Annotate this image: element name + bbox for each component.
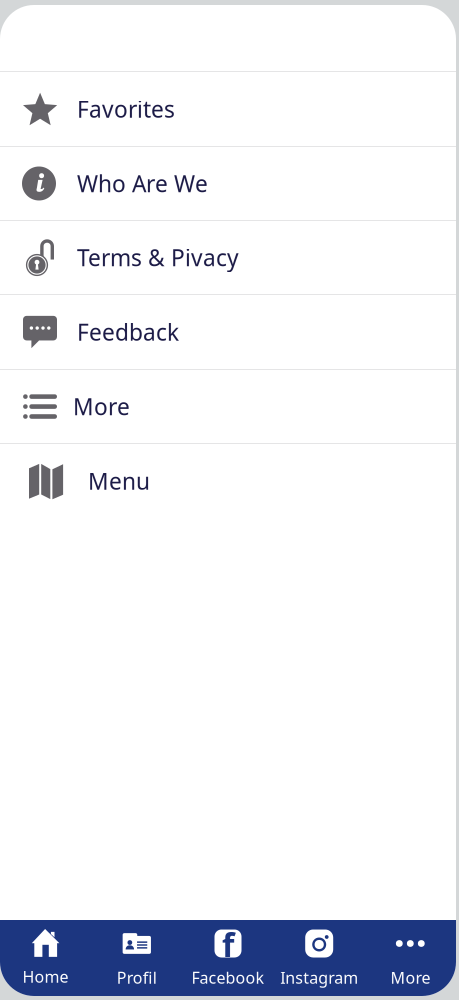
button[interactable]: More — [0, 370, 456, 443]
button[interactable]: Who Are We — [0, 147, 456, 220]
button[interactable]: Profil — [91, 920, 182, 996]
button[interactable]: Instagram — [274, 920, 365, 996]
staticText: Profil — [117, 967, 157, 988]
staticText: More — [73, 391, 130, 421]
staticText: Favorites — [77, 94, 175, 124]
staticText: Home — [23, 966, 69, 987]
staticText: Who Are We — [77, 168, 208, 198]
staticText: More — [390, 967, 430, 988]
button[interactable]: Menu — [0, 444, 456, 518]
button[interactable]: Home — [0, 920, 91, 996]
button[interactable]: f — [182, 920, 274, 996]
staticText: Terms & Pivacy — [77, 242, 239, 272]
button[interactable]: Terms & Pivacy — [0, 221, 456, 294]
staticText: Menu — [88, 466, 150, 496]
staticText: Feedback — [77, 317, 179, 347]
staticText: Facebook — [191, 967, 264, 988]
button[interactable]: Feedback — [0, 295, 456, 369]
staticText: f — [222, 923, 234, 966]
staticText: Instagram — [280, 967, 358, 988]
button[interactable]: More — [365, 920, 456, 996]
button[interactable]: Favorites — [0, 72, 456, 146]
